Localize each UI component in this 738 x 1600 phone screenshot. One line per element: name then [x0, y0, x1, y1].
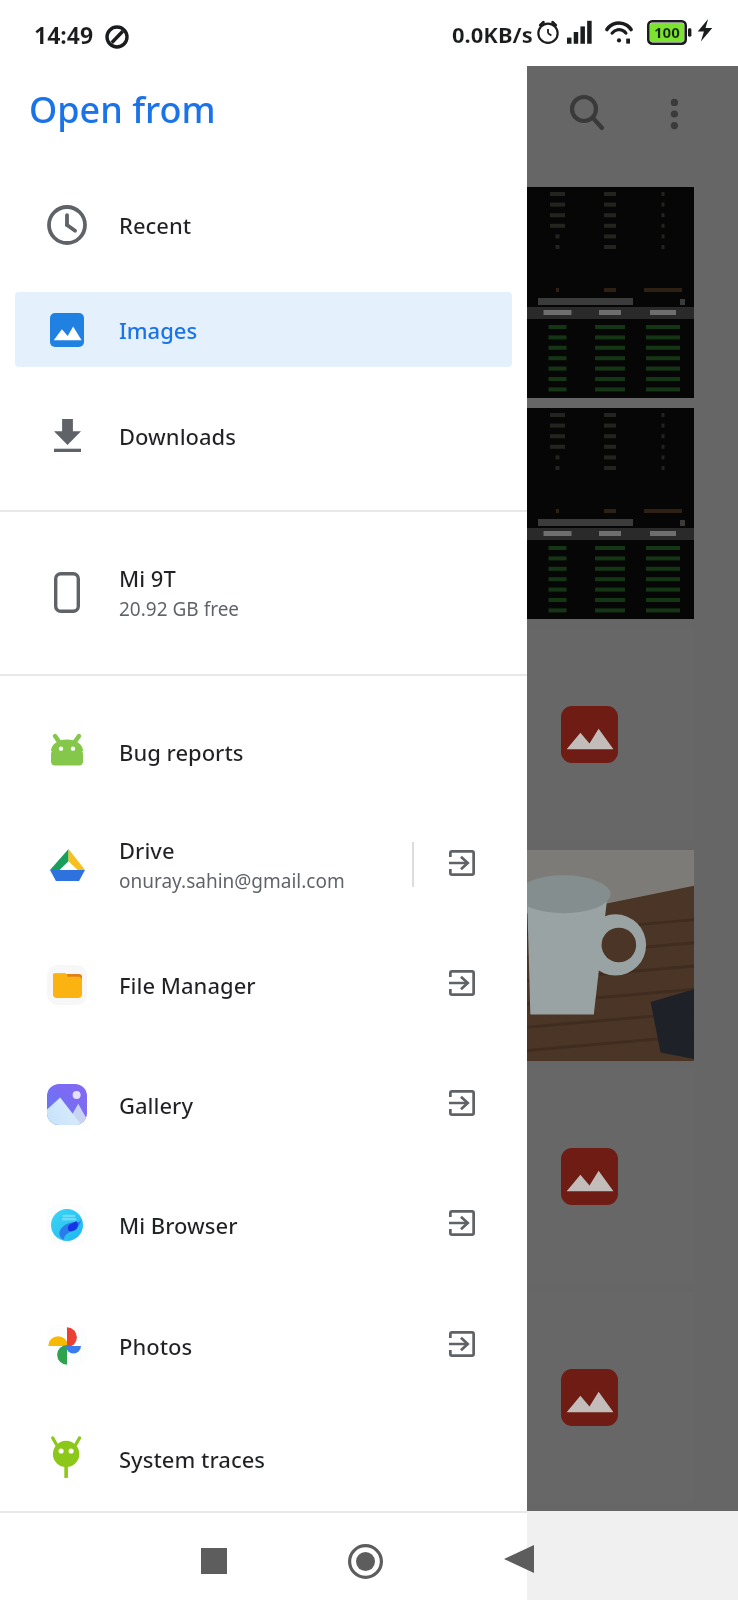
button[interactable]: Open Mi Browser in app	[425, 1187, 499, 1260]
button[interactable]: Photos	[15, 1308, 512, 1383]
button[interactable]	[527, 1071, 694, 1282]
button[interactable]: Open Drive in app	[425, 827, 499, 900]
button[interactable]: Images	[15, 292, 512, 367]
button[interactable]: Open Gallery in app	[425, 1067, 499, 1140]
staticText: Downloads	[119, 421, 236, 451]
button[interactable]: Gallery	[15, 1067, 512, 1142]
button[interactable]: Mi Browser	[15, 1187, 512, 1262]
button[interactable]: Back	[504, 1545, 534, 1573]
button[interactable]: File Manager	[15, 947, 512, 1022]
staticText: Bug reports	[119, 737, 244, 767]
button[interactable]: Mi 9T	[15, 555, 512, 630]
staticText: 100	[654, 22, 680, 42]
button[interactable]: Bug reports	[15, 714, 512, 789]
staticText: File Manager	[119, 970, 256, 1000]
button[interactable]	[527, 1292, 694, 1503]
staticText: System traces	[119, 1444, 266, 1474]
button[interactable]	[527, 629, 694, 840]
button[interactable]: System traces	[15, 1421, 512, 1496]
staticText: onuray.sahin@gmail.com	[119, 868, 345, 894]
button[interactable]: Recent	[15, 187, 512, 262]
staticText: Images	[119, 315, 198, 345]
staticText: Open from	[29, 85, 216, 134]
button[interactable]	[527, 408, 694, 619]
button[interactable]: Open Photos in app	[425, 1308, 499, 1381]
button[interactable]: Drive	[15, 827, 512, 902]
staticText: Recent	[119, 210, 192, 240]
button[interactable]	[527, 850, 694, 1061]
staticText: 20.92 GB free	[119, 596, 240, 622]
button[interactable]: Open File Manager in app	[425, 947, 499, 1020]
staticText: Photos	[119, 1331, 193, 1361]
button[interactable]: Downloads	[15, 398, 512, 473]
staticText: Drive	[119, 835, 175, 865]
button[interactable]: Search	[552, 77, 616, 141]
staticText: Mi 9T	[119, 563, 176, 593]
button[interactable]	[527, 187, 694, 398]
staticText: 0.0KB/s	[452, 19, 533, 49]
staticText: Mi Browser	[119, 1210, 238, 1240]
button[interactable]	[527, 1513, 694, 1600]
button[interactable]: More options	[646, 80, 702, 136]
button[interactable]: Home	[348, 1544, 383, 1579]
staticText: Gallery	[119, 1090, 194, 1120]
staticText: 14:49	[34, 19, 94, 50]
